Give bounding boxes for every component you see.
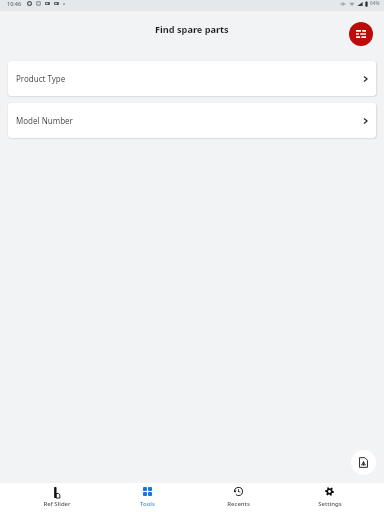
staticText: Tools — [140, 500, 155, 508]
button[interactable]: Product Type — [8, 61, 376, 96]
staticText: Recents — [227, 500, 250, 508]
button[interactable]: Settings — [284, 483, 375, 512]
button[interactable]: Ref Slider — [11, 483, 102, 512]
button[interactable]: Tools — [102, 483, 193, 512]
staticText: 64% — [370, 0, 380, 7]
staticText: Model Number — [16, 115, 73, 126]
button[interactable]: Model Number — [8, 103, 376, 138]
staticText: Product Type — [16, 73, 66, 84]
button[interactable]: Request quote — [351, 450, 376, 475]
staticText: Find spare parts — [155, 23, 229, 36]
staticText: 10:46 — [7, 0, 22, 7]
staticText: Settings — [318, 500, 342, 508]
staticText: Ref Slider — [43, 500, 71, 508]
button[interactable]: Filter — [349, 22, 373, 46]
button[interactable]: Recents — [193, 483, 284, 512]
